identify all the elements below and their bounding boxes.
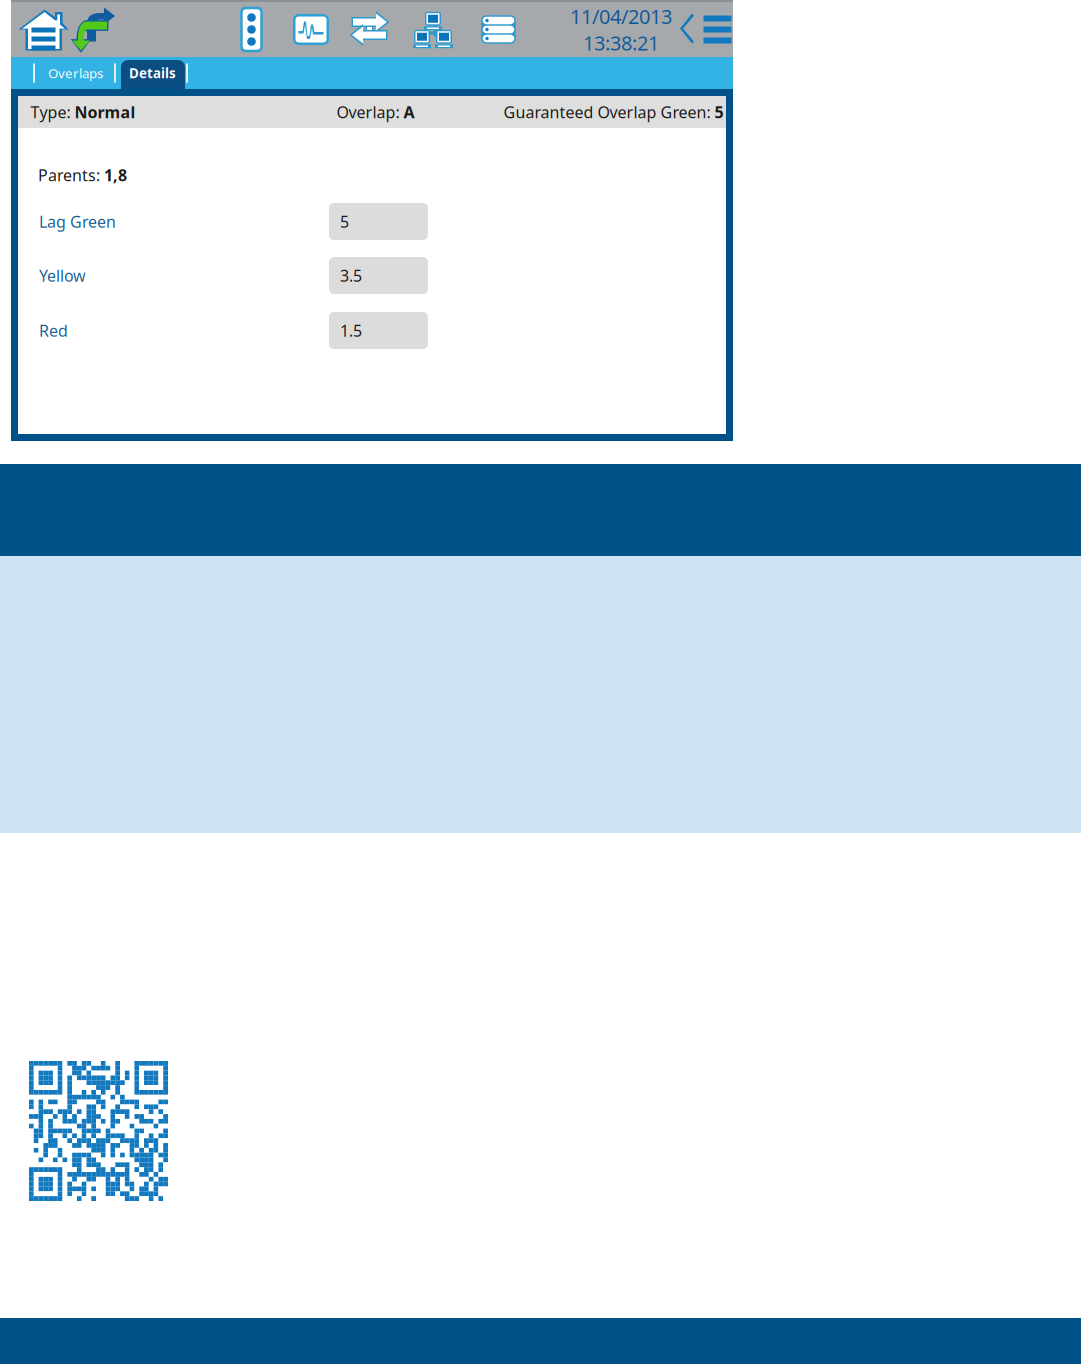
staticText: 3.5 <box>340 265 362 286</box>
staticText: 11/04/2013 <box>570 3 672 29</box>
staticText: 5 <box>340 211 349 232</box>
button[interactable]: Signals <box>241 7 262 51</box>
button[interactable]: Details <box>129 57 181 89</box>
staticText: Guaranteed Overlap Green: 5 <box>503 101 723 123</box>
button[interactable]: Overlaps <box>48 57 104 89</box>
staticText: Type: Normal <box>30 101 135 123</box>
staticText: Yellow <box>39 265 86 286</box>
button[interactable]: Exchange <box>353 7 389 51</box>
staticText: Parents: 1,8 <box>38 164 127 186</box>
staticText: Red <box>39 320 68 341</box>
button[interactable]: Back <box>75 6 116 52</box>
button[interactable]: Menu <box>702 12 733 46</box>
staticText: Details <box>129 64 176 82</box>
staticText: Lag Green <box>39 211 116 232</box>
staticText: Overlap: A <box>336 101 414 123</box>
button[interactable]: Back <box>681 12 697 46</box>
button[interactable]: Lists <box>482 7 515 51</box>
staticText: 13:38:21 <box>583 29 659 56</box>
button[interactable]: Monitor <box>295 7 327 51</box>
button[interactable]: Home <box>18 7 69 51</box>
staticText: Overlaps <box>48 64 103 82</box>
button[interactable]: Network <box>415 7 457 51</box>
staticText: 1.5 <box>340 320 362 341</box>
